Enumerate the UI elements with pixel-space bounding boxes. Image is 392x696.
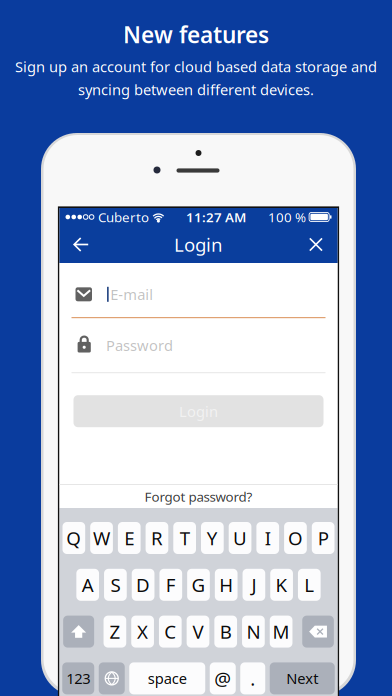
button[interactable]: P [312, 522, 334, 554]
staticText: Z [109, 619, 120, 644]
staticText: New features [123, 19, 269, 49]
staticText: J [251, 572, 256, 597]
button[interactable]: C [159, 616, 182, 648]
button[interactable]: D [132, 569, 154, 601]
button[interactable]: Q [62, 522, 85, 554]
button[interactable]: H [215, 569, 238, 601]
staticText: D [136, 572, 150, 597]
staticText: @ [214, 666, 231, 691]
staticText: E [124, 526, 134, 550]
button[interactable]: E [118, 522, 141, 554]
button[interactable]: N [242, 616, 265, 648]
staticText: Next [286, 669, 318, 688]
staticText: A [82, 572, 94, 597]
button[interactable]: Delete [302, 616, 334, 648]
button[interactable]: B [214, 616, 237, 648]
button[interactable]: Back [60, 223, 102, 265]
staticText: N [246, 619, 260, 644]
button[interactable]: J [243, 569, 265, 601]
staticText: Login [179, 401, 218, 421]
button[interactable]: Forgot password? [59, 485, 337, 508]
button[interactable]: Y [201, 522, 224, 554]
staticText: Cuberto [98, 208, 149, 226]
staticText: I [265, 526, 271, 550]
button[interactable]: Close [295, 223, 337, 265]
staticText: V [192, 619, 203, 644]
button[interactable]: . [240, 662, 265, 694]
button[interactable]: F [159, 569, 182, 601]
staticText: E-mail [110, 285, 153, 304]
staticText: X [137, 619, 148, 644]
button[interactable]: @ [210, 662, 236, 694]
button[interactable]: O [284, 522, 307, 554]
staticText: Login [174, 232, 223, 257]
staticText: 11:27 AM [186, 208, 246, 226]
button[interactable]: space [129, 662, 205, 694]
staticText: Password [106, 335, 173, 355]
staticText: syncing between different devices. [78, 80, 314, 99]
staticText: U [233, 526, 247, 550]
staticText: T [180, 526, 190, 550]
staticText: C [164, 619, 176, 644]
staticText: H [219, 572, 233, 597]
button[interactable]: K [270, 569, 293, 601]
staticText: O [288, 526, 303, 550]
button[interactable]: Shift [63, 616, 94, 648]
button[interactable]: I [256, 522, 279, 554]
button[interactable]: T [173, 522, 196, 554]
button[interactable]: R [146, 522, 168, 554]
staticText: P [318, 526, 329, 550]
button[interactable]: W [90, 522, 113, 554]
button[interactable]: L [298, 569, 321, 601]
staticText: 100 % [268, 208, 306, 226]
staticText: B [220, 619, 232, 644]
staticText: K [276, 572, 288, 597]
button[interactable]: S [104, 569, 127, 601]
staticText: Y [207, 526, 218, 550]
button[interactable]: G [187, 569, 210, 601]
button[interactable]: Z [104, 616, 126, 648]
staticText: G [191, 572, 205, 597]
staticText: L [304, 572, 314, 597]
button[interactable]: A [76, 569, 99, 601]
staticText: Sign up an account for cloud based data … [15, 57, 377, 76]
button[interactable]: Next [270, 662, 335, 694]
button[interactable]: X [131, 616, 154, 648]
button[interactable]: V [187, 616, 209, 648]
button[interactable]: 123 [62, 662, 94, 694]
staticText: F [166, 572, 176, 597]
button[interactable]: Next keyboard [99, 662, 125, 694]
staticText: . [250, 666, 255, 691]
staticText: Q [66, 526, 81, 550]
staticText: S [110, 572, 120, 597]
staticText: space [148, 669, 187, 688]
staticText: 123 [66, 669, 90, 688]
button[interactable]: M [270, 616, 292, 648]
staticText: W [93, 526, 110, 550]
staticText: Forgot password? [144, 488, 252, 505]
staticText: M [273, 619, 290, 644]
button[interactable]: U [229, 522, 251, 554]
staticText: R [151, 526, 163, 550]
